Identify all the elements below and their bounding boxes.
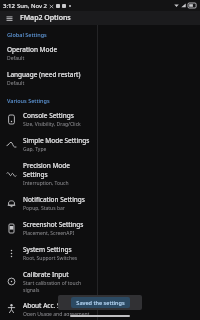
- staticText: Language (need restart): [7, 70, 81, 79]
- button[interactable]: About Acc. Service: [0, 297, 97, 320]
- button[interactable]: Screenshot Settings: [0, 216, 97, 241]
- staticText: Open Usage and agreement on FMap2 Access…: [23, 311, 91, 316]
- staticText: Sun, Nov 2: [17, 2, 47, 10]
- staticText: Default: [7, 55, 25, 62]
- staticText: Gap, Type: [23, 146, 47, 153]
- staticText: Precision Mode Settings: [23, 161, 91, 179]
- button[interactable]: System Settings: [0, 241, 97, 266]
- staticText: Popup, Status bar: [23, 205, 65, 212]
- staticText: Interruption, Touch: [23, 180, 69, 187]
- staticText: About Acc. Service: [23, 301, 79, 310]
- staticText: Saved the settings: [76, 299, 125, 306]
- staticText: Simple Mode Settings: [23, 136, 90, 145]
- staticText: Default: [7, 80, 25, 87]
- button[interactable]: Simple Mode Settings: [0, 132, 97, 157]
- staticText: Screenshot Settings: [23, 220, 84, 229]
- staticText: Global Settings: [7, 31, 47, 38]
- staticText: System Settings: [23, 245, 72, 254]
- staticText: Calibrate Input: [23, 270, 69, 279]
- button[interactable]: Operation Mode: [0, 41, 97, 66]
- staticText: Root, Support Switches: [23, 255, 78, 262]
- button[interactable]: Precision Mode Settings: [0, 157, 97, 191]
- staticText: Notification Settings: [23, 195, 85, 204]
- button[interactable]: Notification Settings: [0, 191, 97, 216]
- staticText: Start calibration of touch signals: [23, 280, 91, 293]
- button[interactable]: Language (need restart): [0, 66, 97, 91]
- staticText: Placement, ScreenAPI: [23, 230, 75, 237]
- staticText: Size, Visibility, Drag/Click: [23, 121, 81, 128]
- button[interactable]: Saved the settings: [71, 297, 130, 308]
- staticText: FMap2 Options: [20, 13, 71, 23]
- staticText: Various Settings: [7, 97, 50, 104]
- staticText: 3:12: [3, 2, 15, 10]
- staticText: Operation Mode: [7, 45, 58, 54]
- button[interactable]: Open navigation menu: [4, 13, 14, 23]
- button[interactable]: Calibrate Input: [0, 266, 97, 297]
- button[interactable]: Console Settings: [0, 107, 97, 132]
- staticText: Console Settings: [23, 111, 74, 120]
